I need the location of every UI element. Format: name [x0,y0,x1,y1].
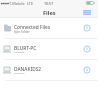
button[interactable]: Info [80,39,94,59]
button[interactable]: BLURT-PC [0,39,98,59]
button[interactable]: Info [80,18,94,38]
staticText: 10:57 [44,1,54,6]
button[interactable]: Info [80,60,94,80]
staticText: DANAKIDS2 [14,66,42,73]
staticText: Sync Folder [14,30,30,34]
button[interactable]: Menu [82,7,98,18]
staticText: Connected Files [14,24,51,31]
staticText: T-Mobile LTE [9,1,34,6]
staticText: Files [43,9,56,17]
button[interactable]: DANAKIDS2 [0,60,98,80]
staticText: WINDOWS [14,51,25,54]
staticText: BLURT-PC [14,45,37,52]
button[interactable]: Connected Files [0,18,98,38]
staticText: WINDOWS [14,72,25,75]
